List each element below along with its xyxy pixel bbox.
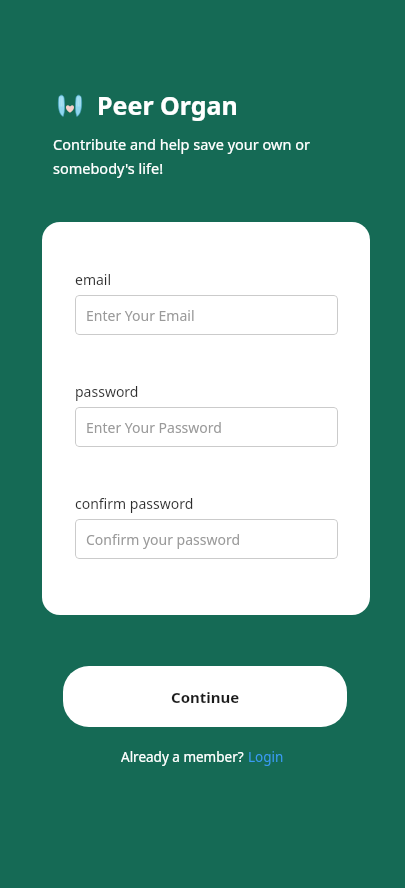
button[interactable]: Enter Your Email: [75, 295, 338, 335]
button[interactable]: Continue: [63, 666, 347, 727]
staticText: confirm password: [75, 494, 194, 513]
button[interactable]: Confirm your password: [75, 519, 338, 559]
staticText: Enter Your Password: [86, 418, 222, 437]
staticText: Login: [248, 748, 284, 766]
staticText: Already a member?: [121, 748, 248, 766]
staticText: email: [75, 270, 112, 289]
staticText: Confirm your password: [86, 530, 241, 549]
staticText: password: [75, 382, 139, 401]
staticText: Enter Your Email: [86, 306, 195, 325]
staticText: Continue: [171, 687, 240, 707]
staticText: Contribute and help save your own or som…: [53, 134, 310, 178]
button[interactable]: Enter Your Password: [75, 407, 338, 447]
button[interactable]: Login: [248, 748, 284, 766]
staticText: Peer Organ: [97, 88, 238, 122]
